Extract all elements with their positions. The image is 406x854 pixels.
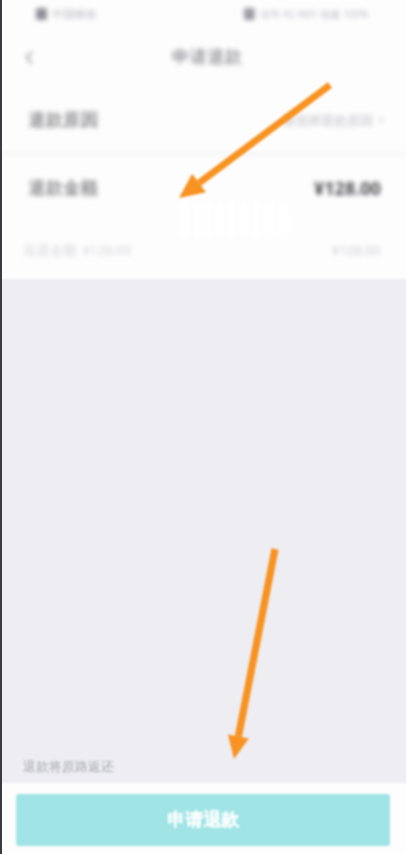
button[interactable]: 退款原因 <box>0 86 406 153</box>
staticText: 应退金额 ¥128.00 <box>24 241 131 259</box>
staticText: 申请退款 <box>172 46 242 68</box>
staticText: 信号 4G WiFi 电量 100% <box>260 7 369 21</box>
staticText: 申请退款 <box>167 809 239 832</box>
button[interactable]: 申请退款 <box>16 794 390 846</box>
button[interactable]: 返回 <box>12 40 46 74</box>
staticText: 退款原因 <box>28 109 98 131</box>
staticText: 退款将原路返还 <box>23 758 114 774</box>
staticText: 中国移动 <box>52 7 96 21</box>
staticText: 请选择退款原因 <box>282 112 373 128</box>
staticText: ¥128.00 <box>332 241 381 259</box>
staticText: ¥128.00 <box>314 176 381 201</box>
staticText: 退款金额 <box>28 177 98 199</box>
